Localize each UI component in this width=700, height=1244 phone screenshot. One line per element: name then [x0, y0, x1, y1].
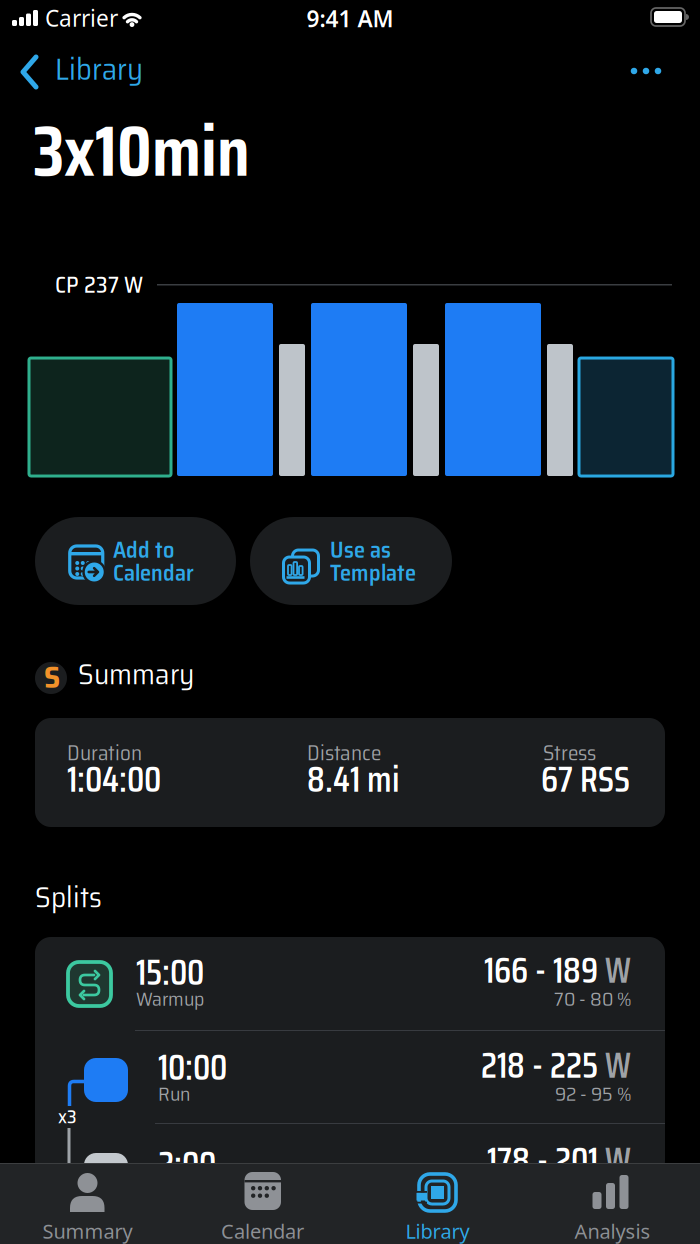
staticText: Template — [330, 555, 416, 591]
staticText: Stress — [543, 736, 596, 770]
staticText: 218 - 225 — [481, 1037, 598, 1094]
staticText: Splits — [35, 874, 102, 920]
staticText: 92 - 95 % — [555, 1078, 632, 1109]
button[interactable] — [616, 49, 676, 93]
staticText: Library — [405, 1218, 469, 1244]
staticText: Add to — [113, 532, 174, 568]
staticText: Duration — [67, 736, 142, 770]
staticText: W — [598, 1037, 631, 1094]
staticText: W — [598, 942, 631, 999]
staticText: 67 RSS — [541, 751, 630, 808]
staticText: 3x10min — [33, 94, 250, 207]
staticText: Distance — [307, 736, 381, 770]
staticText: Summary — [42, 1218, 132, 1244]
staticText: 1:04:00 — [67, 751, 161, 808]
staticText: 70 - 80 % — [554, 983, 632, 1014]
staticText: W — [598, 1132, 631, 1189]
button[interactable]: Add to — [35, 517, 236, 605]
staticText: Analysis — [574, 1218, 650, 1244]
staticText: 166 - 189 — [484, 942, 598, 999]
staticText: Warmup — [136, 983, 204, 1014]
button[interactable]: Use as — [250, 517, 452, 605]
staticText: 15:00 — [136, 944, 204, 1001]
staticText: Use as — [330, 532, 391, 568]
staticText: Library — [55, 45, 143, 93]
staticText: Run — [158, 1078, 190, 1109]
staticText: 178 - 201 — [487, 1132, 598, 1189]
staticText: 9:41 AM — [306, 3, 393, 33]
staticText: 8.41 mi — [307, 751, 399, 808]
staticText: Summary — [78, 651, 194, 697]
button[interactable]: Library — [12, 44, 150, 96]
staticText: 10:00 — [158, 1039, 227, 1096]
staticText: Calendar — [221, 1218, 304, 1244]
button[interactable]: Summary — [0, 1163, 175, 1244]
staticText: S — [44, 653, 60, 701]
button[interactable]: Analysis — [525, 1163, 700, 1244]
staticText: CP 237 W — [55, 267, 143, 303]
staticText: 2:00 — [158, 1136, 216, 1193]
staticText: Calendar — [113, 555, 194, 591]
button[interactable]: Calendar — [175, 1163, 350, 1244]
staticText: x3 — [58, 1102, 77, 1131]
button[interactable]: Library — [350, 1163, 525, 1244]
staticText: Carrier — [45, 3, 118, 33]
